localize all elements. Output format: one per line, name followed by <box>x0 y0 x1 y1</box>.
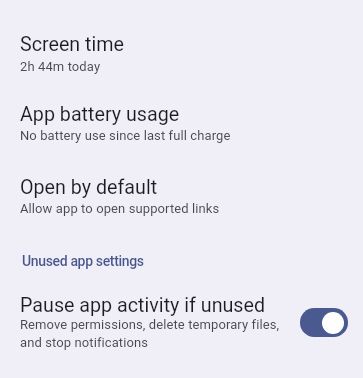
button[interactable]: Open by default <box>0 170 363 224</box>
staticText: Pause app activity if unused <box>20 294 266 317</box>
staticText: Open by default <box>20 176 158 199</box>
staticText: Unused app settings <box>22 253 144 269</box>
button[interactable]: Screen time <box>0 26 363 80</box>
staticText: Allow app to open supported links <box>20 201 220 216</box>
button[interactable] <box>300 308 348 337</box>
staticText: Remove permissions, delete temporary fil… <box>20 317 280 332</box>
button[interactable]: App battery usage <box>0 96 363 150</box>
staticText: App battery usage <box>20 103 180 126</box>
staticText: No battery use since last full charge <box>20 128 231 143</box>
button[interactable]: Pause app activity if unused <box>0 288 363 356</box>
staticText: and stop notifications <box>20 335 149 350</box>
staticText: Screen time <box>20 33 125 56</box>
staticText: 2h 44m today <box>20 59 101 74</box>
